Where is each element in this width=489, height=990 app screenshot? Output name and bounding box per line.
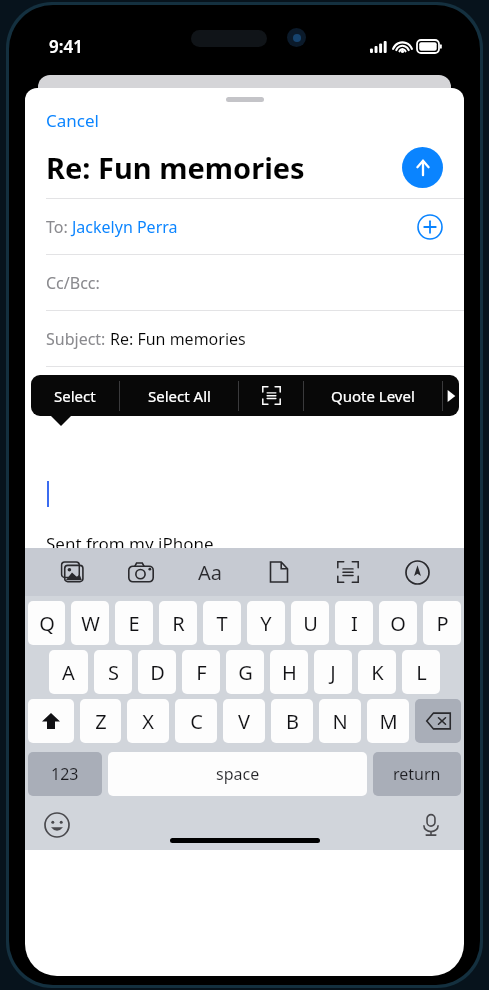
button[interactable]: H	[270, 650, 308, 694]
button[interactable]: Document	[257, 554, 301, 590]
button[interactable]: M	[367, 699, 409, 743]
button[interactable]: Cancel	[46, 109, 99, 132]
button[interactable]: N	[319, 699, 361, 743]
button[interactable]: Select All	[120, 375, 238, 416]
button[interactable]: Scan document	[326, 554, 370, 590]
button[interactable]: L	[402, 650, 440, 694]
button[interactable]: E	[115, 601, 153, 645]
button[interactable]: I	[335, 601, 373, 645]
staticText: Quote Level	[331, 386, 415, 406]
button[interactable]: O	[379, 601, 417, 645]
staticText: Cc/Bcc:	[46, 272, 100, 294]
staticText: N	[332, 708, 348, 735]
button[interactable]: space	[108, 752, 367, 796]
staticText: D	[150, 659, 165, 686]
button[interactable]: V	[223, 699, 265, 743]
staticText: Subject:	[46, 328, 110, 350]
staticText: Q	[39, 610, 55, 637]
button[interactable]: More	[443, 375, 459, 416]
button[interactable]: X	[127, 699, 169, 743]
staticText: 9:41	[49, 35, 83, 58]
staticText: T	[216, 610, 228, 637]
button[interactable]: Markup	[395, 554, 439, 590]
staticText: I	[351, 610, 358, 637]
button[interactable]: A	[49, 650, 88, 694]
staticText: S	[108, 659, 119, 686]
staticText: V	[238, 708, 250, 735]
button[interactable]: C	[175, 699, 217, 743]
button[interactable]: Q	[28, 601, 65, 645]
button[interactable]: Subject:	[25, 311, 464, 366]
button[interactable]: Send	[402, 147, 443, 188]
staticText: Select All	[148, 386, 211, 406]
button[interactable]: F	[182, 650, 220, 694]
button[interactable]: P	[423, 601, 461, 645]
button[interactable]: R	[159, 601, 197, 645]
staticText: L	[416, 659, 427, 686]
staticText: Y	[260, 610, 272, 637]
staticText: O	[390, 610, 406, 637]
button[interactable]: G	[226, 650, 264, 694]
staticText: J	[330, 659, 336, 686]
staticText: Sent from my iPhone	[46, 532, 214, 548]
button[interactable]: Emoji	[41, 809, 73, 841]
button[interactable]: Select	[31, 375, 119, 416]
staticText: C	[190, 708, 203, 735]
button[interactable]: Shift	[28, 699, 74, 743]
button[interactable]: W	[71, 601, 109, 645]
button[interactable]: Dictate	[416, 810, 446, 840]
staticText: P	[436, 610, 449, 637]
staticText: Re: Fun memories	[110, 328, 246, 350]
button[interactable]: B	[271, 699, 313, 743]
staticText: Dear Jackelyn,	[46, 381, 159, 404]
staticText: U	[303, 610, 318, 637]
staticText: F	[196, 659, 207, 686]
button[interactable]: D	[138, 650, 176, 694]
button[interactable]: Y	[247, 601, 285, 645]
button[interactable]: Camera	[119, 554, 163, 590]
staticText: M	[379, 708, 398, 735]
button[interactable]: Aa	[188, 554, 232, 590]
staticText: X	[142, 708, 154, 735]
staticText: Z	[95, 708, 107, 735]
staticText: E	[128, 610, 140, 637]
staticText: Select	[54, 386, 96, 406]
button[interactable]: U	[291, 601, 329, 645]
staticText: B	[286, 708, 299, 735]
staticText: A	[62, 659, 75, 686]
staticText: Re: Fun memories	[46, 148, 305, 187]
button[interactable]: K	[358, 650, 396, 694]
button[interactable]: Add contact	[417, 214, 443, 240]
button[interactable]: To:	[25, 199, 464, 254]
staticText: space	[216, 763, 260, 785]
staticText: 123	[51, 763, 79, 785]
button[interactable]: J	[314, 650, 352, 694]
button[interactable]: Scan text	[239, 375, 303, 416]
button[interactable]: Quote Level	[304, 375, 442, 416]
staticText: K	[371, 659, 384, 686]
staticText: G	[238, 659, 253, 686]
staticText: W	[81, 610, 100, 637]
staticText: return	[393, 763, 441, 785]
staticText: To:	[46, 216, 72, 238]
button[interactable]: S	[94, 650, 132, 694]
button[interactable]: return	[373, 752, 461, 796]
staticText: R	[172, 610, 185, 637]
staticText: H	[282, 659, 297, 686]
button[interactable]: Backspace	[415, 699, 461, 743]
button[interactable]: Cc/Bcc:	[25, 255, 464, 310]
button[interactable]: T	[203, 601, 241, 645]
staticText: Aa	[198, 559, 222, 586]
button[interactable]: Z	[80, 699, 121, 743]
button[interactable]: 123	[28, 752, 102, 796]
button[interactable]: Photos	[50, 554, 94, 590]
staticText: Jackelyn Perra	[72, 216, 178, 238]
